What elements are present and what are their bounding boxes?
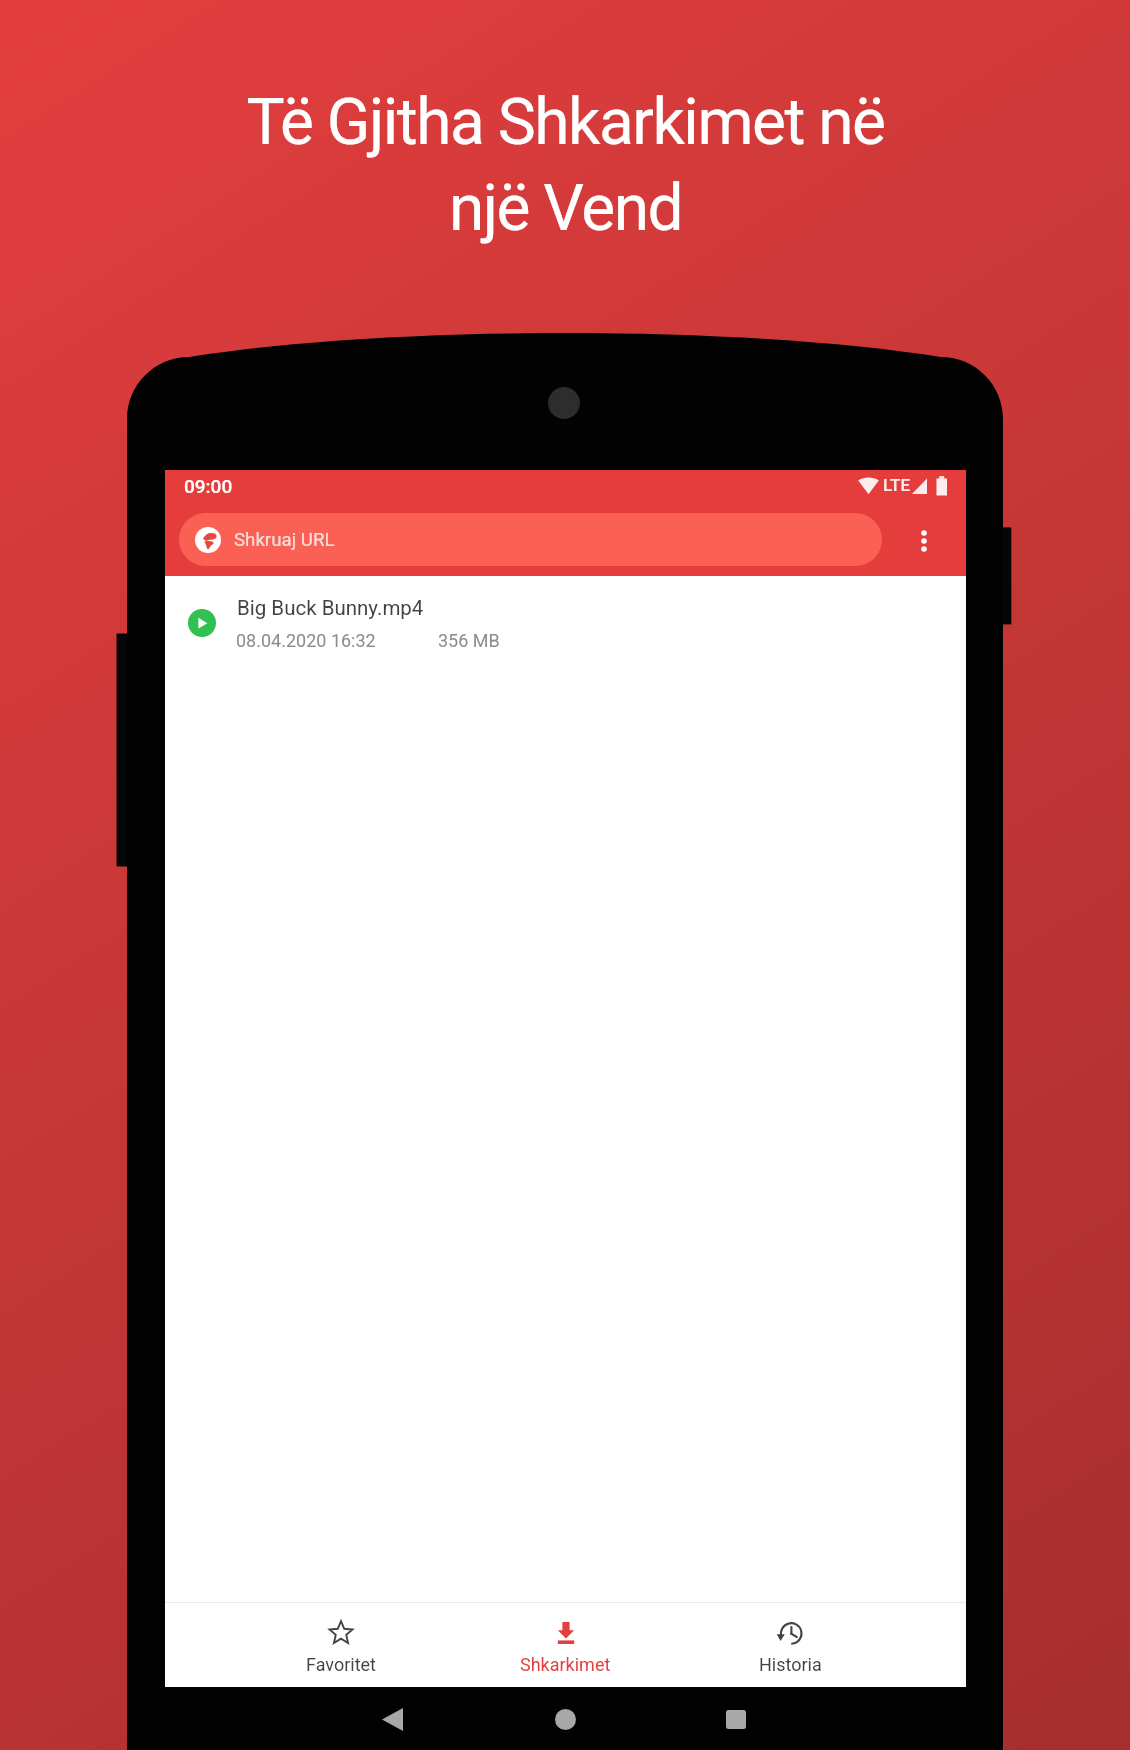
staticText: 08.04.2020 16:32 bbox=[236, 630, 376, 651]
button[interactable]: Shkruaj URL bbox=[179, 513, 882, 566]
staticText: Favoritet bbox=[306, 1654, 376, 1675]
staticText: 356 MB bbox=[438, 630, 500, 651]
button[interactable]: More options bbox=[899, 513, 949, 576]
button[interactable]: Historia bbox=[678, 1603, 903, 1687]
staticText: Të Gjitha Shkarkimet në një Vend bbox=[246, 85, 885, 246]
staticText: Historia bbox=[759, 1654, 822, 1675]
staticText: Big Buck Bunny.mp4 bbox=[237, 596, 424, 620]
staticText: 09:00 bbox=[184, 475, 233, 497]
staticText: LTE bbox=[883, 475, 911, 495]
button[interactable]: Favoritet bbox=[228, 1603, 453, 1687]
staticText: Shkruaj URL bbox=[234, 529, 335, 551]
button[interactable]: Shkarkimet bbox=[453, 1603, 678, 1687]
button[interactable]: Big Buck Bunny.mp4 bbox=[165, 576, 966, 668]
staticText: Shkarkimet bbox=[520, 1654, 611, 1675]
